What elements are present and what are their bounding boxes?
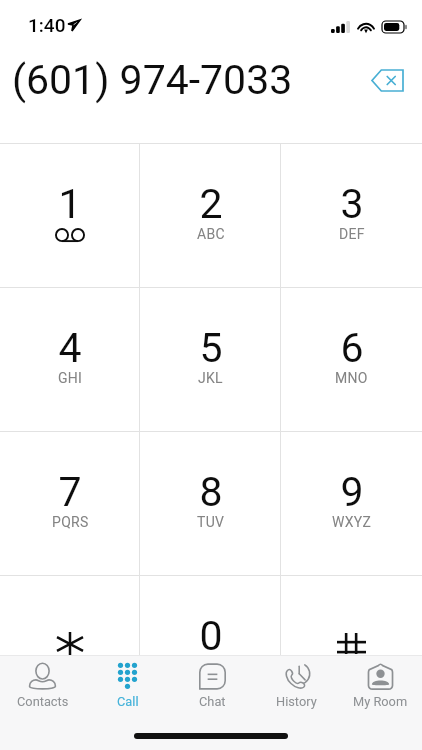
staticText: History [276,694,317,709]
staticText: TUV [197,514,225,530]
button[interactable]: 7 [0,432,140,575]
staticText: 8 [199,468,223,516]
staticText: GHI [58,370,83,386]
button[interactable]: 9 [281,432,422,575]
staticText: JKL [198,370,223,386]
button[interactable]: 5 [140,288,281,431]
staticText: 9 [340,468,364,516]
staticText: Contacts [17,694,69,709]
staticText: 2 [199,180,223,228]
button[interactable]: 8 [140,432,281,575]
staticText: + [206,658,215,674]
staticText: 5 [199,324,223,372]
staticText: 7 [58,468,82,516]
button[interactable]: 3 [281,144,422,287]
staticText: 4 [58,324,82,372]
button[interactable]: 0 [140,576,281,719]
staticText: ABC [197,226,225,242]
button[interactable]: 2 [140,144,281,287]
button[interactable]: 6 [281,288,422,431]
staticText: PQRS [52,514,89,530]
staticText: 1:40 [28,14,66,36]
staticText: 6 [340,324,364,372]
staticText: WXYZ [332,514,372,530]
button[interactable]: Chat [170,655,254,711]
staticText: (601) 974-7033 [12,56,293,104]
staticText: Chat [199,694,226,709]
staticText: My Room [353,694,408,709]
staticText: DEF [339,226,365,242]
button[interactable]: 1 [0,144,140,287]
button[interactable]: Call [85,655,170,711]
button[interactable]: Delete [361,54,413,106]
staticText: 1 [58,180,82,228]
staticText: 0 [199,612,223,660]
button[interactable]: History [254,655,338,711]
button[interactable] [281,576,422,719]
button[interactable]: 4 [0,288,140,431]
staticText: MNO [335,370,368,386]
button[interactable] [0,576,140,719]
button[interactable]: My Room [338,655,422,711]
button[interactable]: Contacts [0,655,85,711]
staticText: Call [117,694,139,709]
staticText: 3 [340,180,364,228]
